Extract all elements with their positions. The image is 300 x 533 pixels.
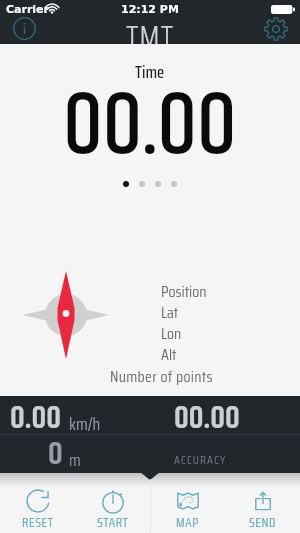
button[interactable]: RESET — [0, 477, 75, 533]
staticText: Carrier — [6, 3, 50, 16]
staticText: Alt — [161, 342, 177, 367]
staticText: MAP — [176, 512, 199, 532]
staticText: km/h — [69, 411, 101, 438]
button[interactable]: START — [75, 477, 150, 533]
button[interactable]: MAP — [150, 477, 225, 533]
staticText: Lon — [161, 321, 182, 346]
staticText: 0 — [48, 430, 63, 473]
staticText: m — [69, 447, 81, 473]
staticText: TMT — [126, 13, 175, 44]
button[interactable]: Info — [8, 13, 40, 44]
staticText: Number of points — [110, 364, 213, 389]
staticText: Time — [135, 59, 165, 86]
staticText: 0.00 — [10, 394, 61, 443]
staticText: Position — [161, 279, 207, 304]
staticText: RESET — [22, 512, 54, 532]
staticText: 12:12 PM — [121, 3, 179, 16]
button[interactable]: Settings — [260, 14, 292, 44]
staticText: START — [97, 512, 129, 532]
staticText: ACCURACY — [174, 450, 227, 469]
staticText: 00.00 — [174, 394, 240, 443]
staticText: 00.00 — [63, 62, 237, 197]
staticText: Lat — [161, 300, 179, 325]
button[interactable]: SEND — [225, 477, 300, 533]
staticText: SEND — [249, 512, 277, 532]
